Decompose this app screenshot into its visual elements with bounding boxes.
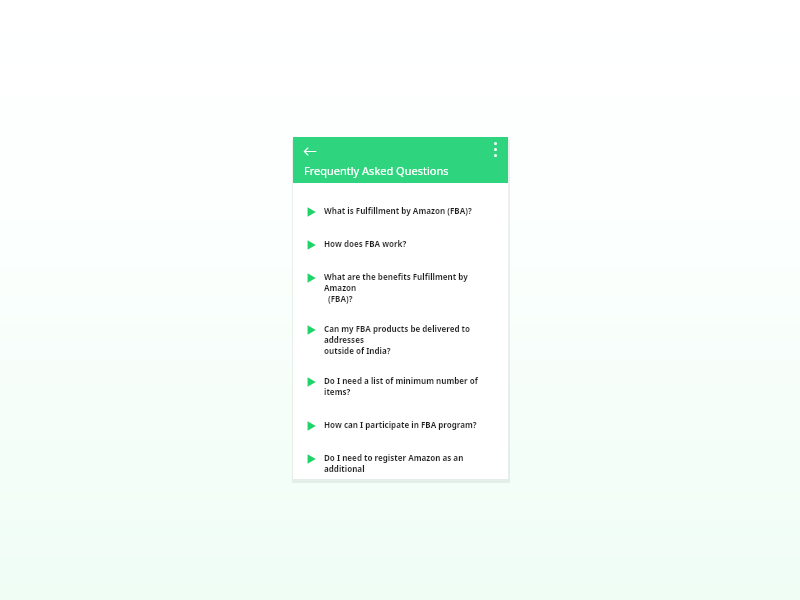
button[interactable]: Do I need a list of minimum number of it… <box>293 372 508 400</box>
staticText: Do I need to register Amazon as an addit… <box>324 452 498 474</box>
staticText: How does FBA work? <box>324 238 407 249</box>
button[interactable]: Back <box>303 145 317 158</box>
button[interactable]: What is Fulfillment by Amazon (FBA)? <box>293 202 508 219</box>
button[interactable]: More options <box>488 142 502 161</box>
staticText: Can my FBA products be delivered to addr… <box>324 323 498 345</box>
staticText: How can I participate in FBA program? <box>324 419 477 430</box>
button[interactable]: How can I participate in FBA program? <box>293 416 508 433</box>
staticText: outside of India? <box>324 345 391 356</box>
button[interactable]: What are the benefits Fulfillment by Ama… <box>293 268 508 307</box>
staticText: What are the benefits Fulfillment by Ama… <box>324 271 498 293</box>
staticText: (FBA)? <box>328 293 353 304</box>
staticText: What is Fulfillment by Amazon (FBA)? <box>324 205 472 216</box>
button[interactable]: How does FBA work? <box>293 235 508 252</box>
button[interactable]: Do I need to register Amazon as an addit… <box>293 449 508 479</box>
staticText: Frequently Asked Questions <box>304 163 449 178</box>
staticText: Do I need a list of minimum number of it… <box>324 375 498 397</box>
button[interactable]: Can my FBA products be delivered to addr… <box>293 320 508 359</box>
